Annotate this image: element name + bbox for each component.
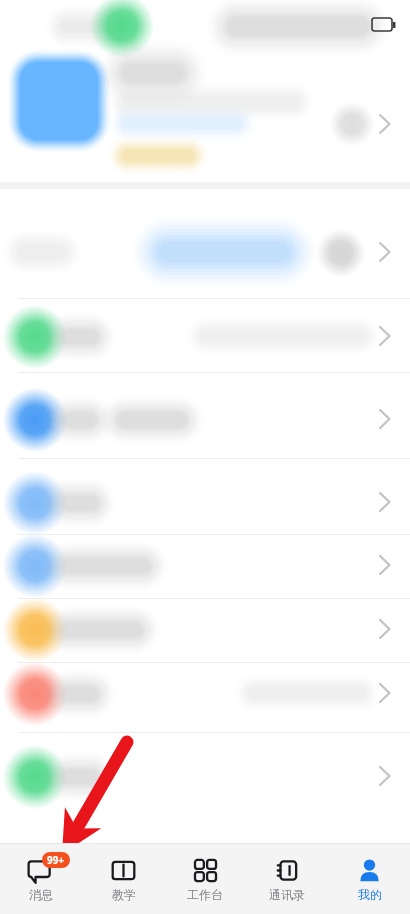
staticText: 通讯录: [269, 887, 305, 902]
staticText: 工作台: [187, 887, 223, 902]
button[interactable]: 通讯录: [246, 844, 328, 914]
staticText: 教学: [112, 887, 136, 902]
button[interactable]: 我的: [328, 844, 410, 914]
button[interactable]: [0, 55, 410, 183]
staticText: 99+: [47, 853, 65, 867]
button[interactable]: [0, 520, 410, 584]
button[interactable]: 教学: [82, 844, 164, 914]
button[interactable]: [0, 648, 410, 718]
button[interactable]: [0, 718, 410, 774]
button[interactable]: [0, 215, 410, 298]
button[interactable]: [0, 457, 410, 520]
staticText: 消息: [29, 887, 53, 902]
button[interactable]: [0, 298, 410, 372]
staticText: 我的: [358, 887, 382, 902]
button[interactable]: [0, 584, 410, 648]
button[interactable]: [0, 372, 410, 457]
button[interactable]: 消息: [0, 844, 82, 914]
button[interactable]: 工作台: [164, 844, 246, 914]
